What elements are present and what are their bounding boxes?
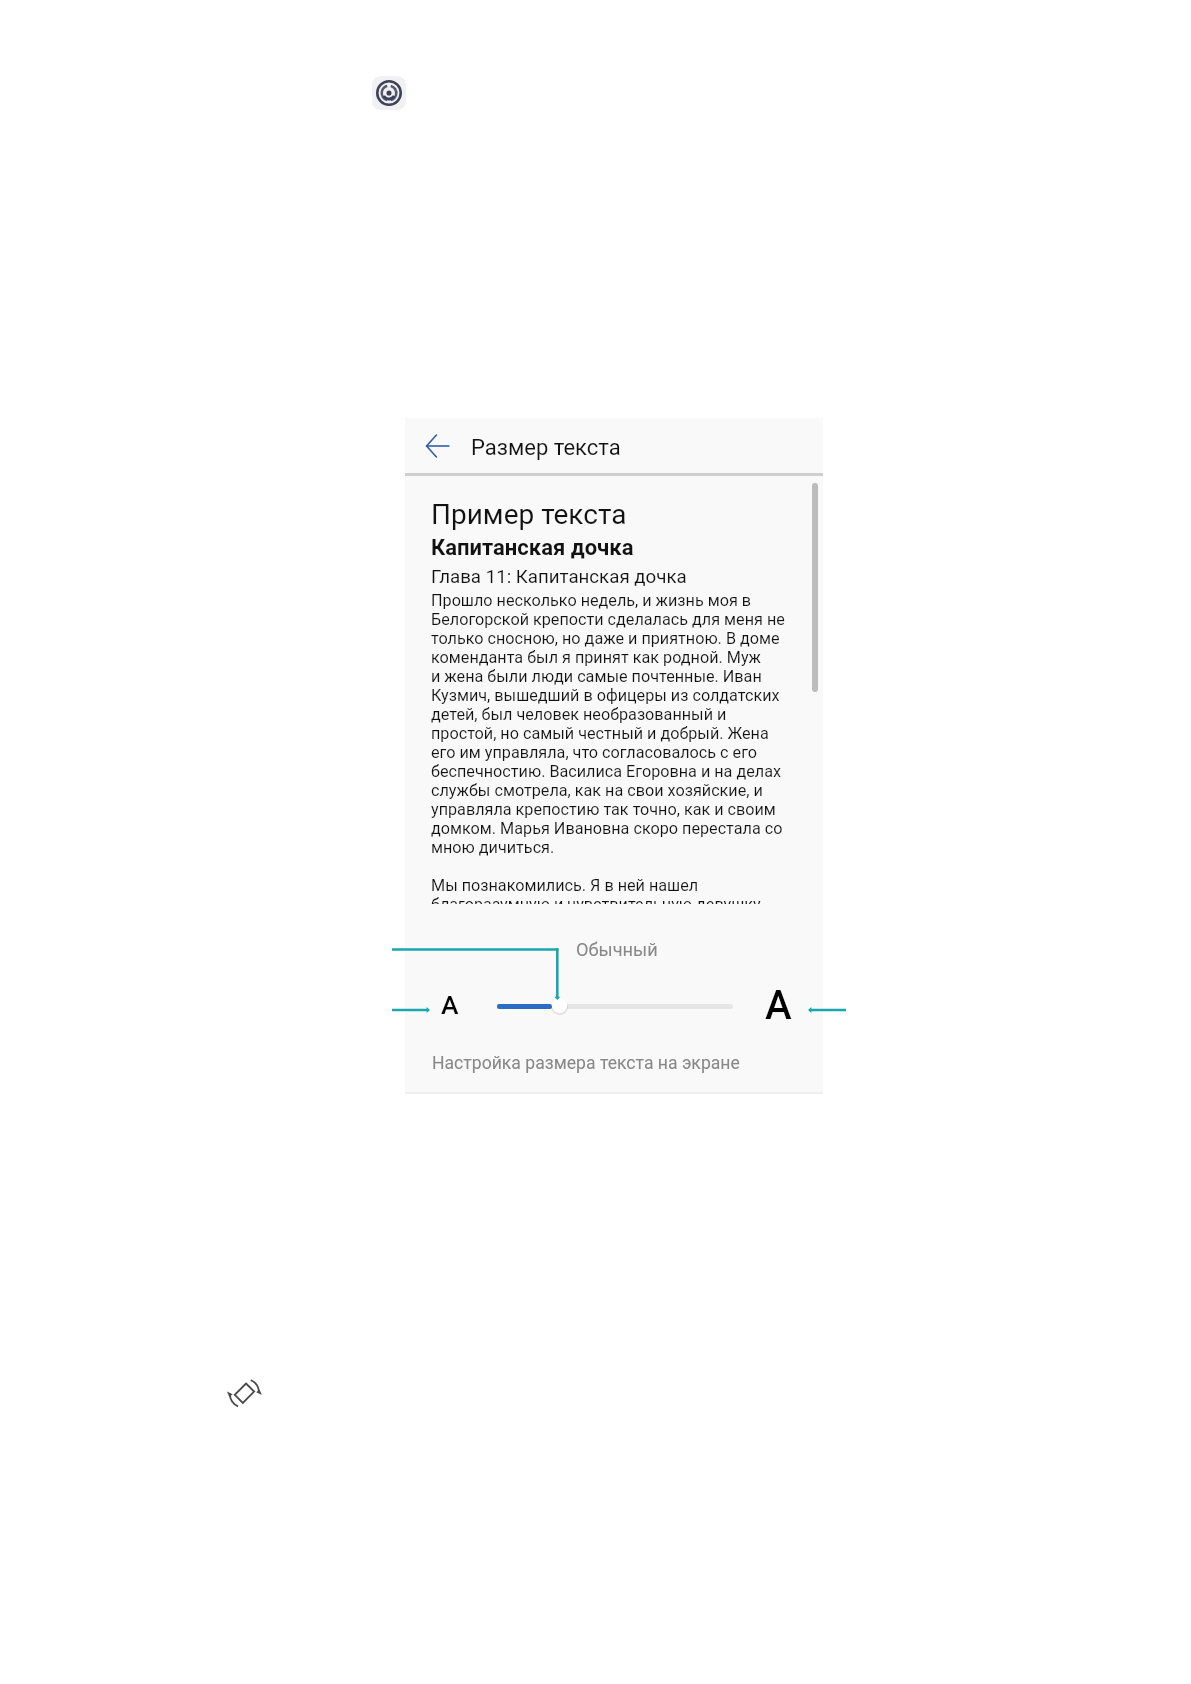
button[interactable]: Rotate screen: [226, 1374, 264, 1412]
staticText: Прошло несколько недель, и жизнь моя в Б…: [431, 591, 785, 904]
staticText: Пример текста: [431, 498, 627, 531]
staticText: Капитанская дочка: [431, 535, 634, 561]
button[interactable]: [497, 1004, 733, 1009]
staticText: A: [441, 990, 459, 1021]
other: Back: [425, 433, 451, 459]
button[interactable]: App icon: [372, 76, 406, 110]
button[interactable]: Text size slider: [551, 997, 568, 1014]
staticText: Обычный: [576, 939, 658, 960]
button[interactable]: Back: [405, 418, 823, 473]
staticText: Настройка размера текста на экране: [432, 1053, 740, 1074]
staticText: Глава 11: Капитанская дочка: [431, 566, 687, 588]
staticText: Размер текста: [471, 435, 621, 461]
staticText: A: [765, 982, 792, 1029]
